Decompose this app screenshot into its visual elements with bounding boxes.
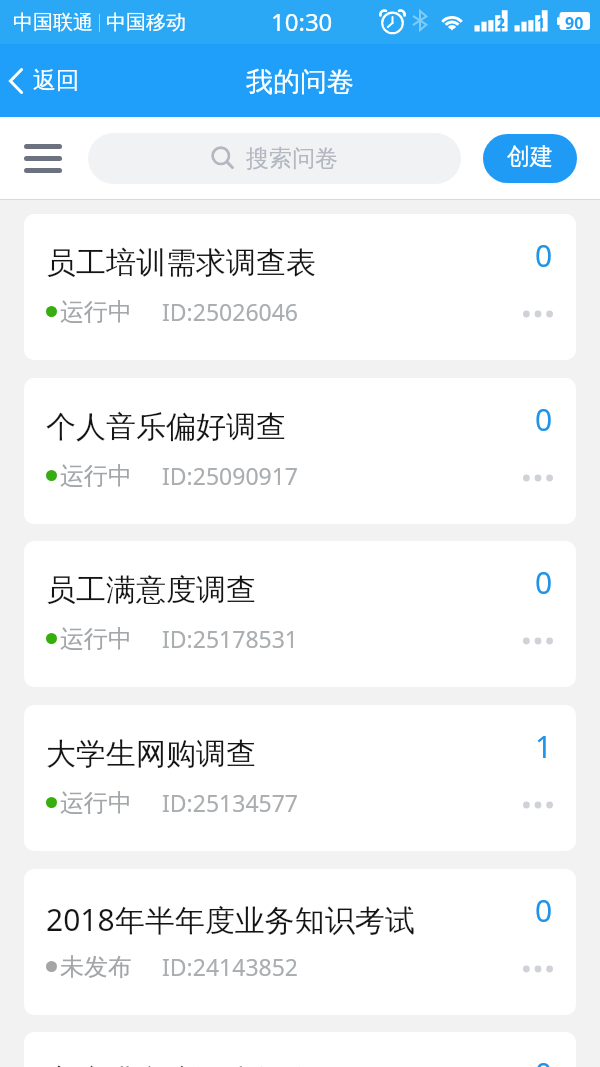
- staticText: 中国联通: [13, 10, 93, 35]
- staticText: 运行中: [60, 624, 132, 654]
- staticText: 大学生网购调查: [46, 735, 256, 773]
- staticText: ID:24143852: [162, 951, 298, 982]
- button[interactable]: More options: [512, 293, 564, 335]
- staticText: 中国移动: [106, 10, 186, 35]
- staticText: 0: [535, 399, 553, 440]
- button[interactable]: 员工培训需求调查表: [24, 214, 576, 360]
- button[interactable]: More options: [512, 620, 564, 662]
- staticText: 1: [535, 726, 553, 767]
- staticText: ID:25090917: [162, 460, 298, 491]
- staticText: 返回: [33, 66, 79, 95]
- staticText: 运行中: [60, 461, 132, 491]
- button[interactable]: More options: [512, 784, 564, 826]
- staticText: 2: [497, 13, 506, 32]
- staticText: ID:25178531: [162, 623, 298, 654]
- button[interactable]: Menu: [10, 130, 76, 186]
- button[interactable]: 大学生网购调查: [24, 705, 576, 851]
- staticText: ID:25134577: [162, 787, 298, 818]
- staticText: 我的问卷: [246, 65, 354, 99]
- staticText: 搜索问卷: [246, 144, 338, 173]
- staticText: 运行中: [60, 788, 132, 818]
- staticText: 运行中: [60, 297, 132, 327]
- staticText: 员工满意度调查: [46, 571, 256, 609]
- button[interactable]: 2018年半年度业务知识考试: [24, 869, 576, 1015]
- staticText: 客户满意度调查问卷: [46, 1062, 316, 1067]
- button[interactable]: 客户满意度调查问卷: [24, 1032, 576, 1067]
- button[interactable]: 个人音乐偏好调查: [24, 378, 576, 524]
- staticText: 0: [535, 1053, 553, 1067]
- button[interactable]: 创建: [483, 134, 577, 183]
- staticText: 0: [535, 890, 553, 931]
- staticText: 10:30: [271, 5, 333, 38]
- button[interactable]: 返回: [0, 56, 93, 105]
- button[interactable]: 员工满意度调查: [24, 541, 576, 687]
- staticText: 0: [535, 562, 553, 603]
- staticText: 0: [535, 235, 553, 276]
- staticText: 个人音乐偏好调查: [46, 408, 286, 446]
- staticText: 未发布: [60, 952, 132, 982]
- staticText: 1: [537, 13, 546, 32]
- staticText: 创建: [507, 142, 553, 171]
- button[interactable]: 搜索问卷: [88, 133, 461, 184]
- button[interactable]: More options: [512, 457, 564, 499]
- staticText: 2018年半年度业务知识考试: [46, 899, 415, 940]
- staticText: 90: [565, 12, 584, 30]
- staticText: ID:25026046: [162, 296, 298, 327]
- button[interactable]: More options: [512, 948, 564, 990]
- staticText: 员工培训需求调查表: [46, 244, 316, 282]
